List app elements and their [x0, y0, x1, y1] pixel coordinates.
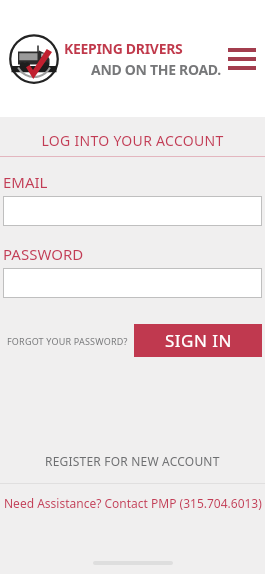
staticText: FORGOT YOUR PASSWORD? [7, 335, 128, 347]
staticText: LOG INTO YOUR ACCOUNT [0, 131, 265, 150]
button[interactable]: REGISTER FOR NEW ACCOUNT [0, 453, 265, 469]
button[interactable]: Menu [228, 43, 256, 75]
staticText: KEEPING DRIVERS HEALTHY [64, 39, 221, 58]
other: Pass My Physical logo [9, 34, 59, 84]
button[interactable] [3, 196, 262, 226]
button[interactable]: Need Assistance? Contact PMP (315.704.60… [0, 495, 265, 511]
staticText: AND ON THE ROAD. [91, 60, 221, 79]
staticText: SIGN IN [165, 329, 232, 352]
staticText: Need Assistance? Contact PMP (315.704.60… [4, 495, 262, 511]
staticText: PASSWORD [3, 244, 84, 264]
staticText: EMAIL [3, 172, 48, 192]
button[interactable] [3, 268, 262, 298]
button[interactable]: SIGN IN [134, 324, 262, 357]
button[interactable]: FORGOT YOUR PASSWORD? [7, 335, 128, 347]
staticText: REGISTER FOR NEW ACCOUNT [45, 453, 220, 469]
